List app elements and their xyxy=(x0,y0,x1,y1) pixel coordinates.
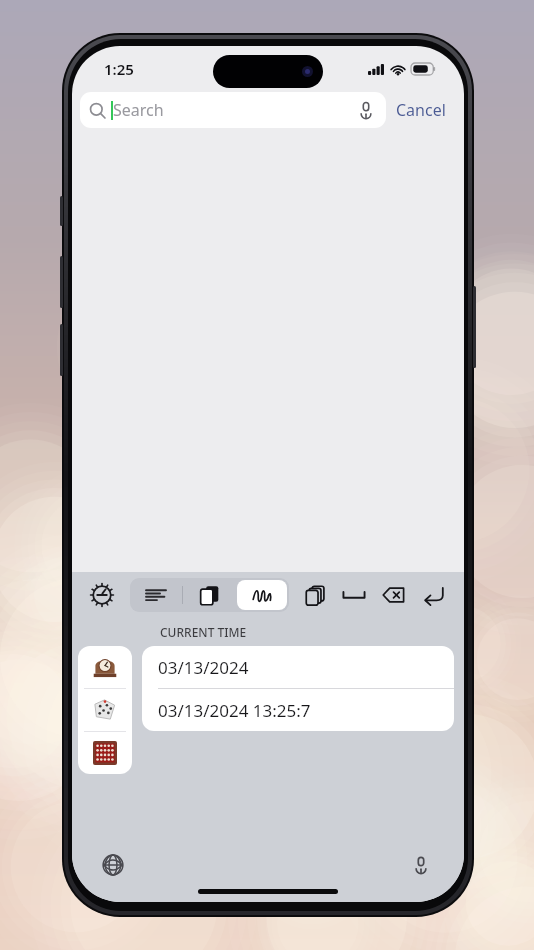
button[interactable]: Paste xyxy=(183,578,235,612)
button[interactable]: Format xyxy=(130,578,182,612)
button[interactable]: Delete xyxy=(378,579,410,611)
button[interactable]: Search xyxy=(80,92,386,128)
button[interactable]: Voice search xyxy=(355,99,377,121)
button[interactable]: Return xyxy=(418,579,450,611)
button[interactable]: Cancel xyxy=(386,93,456,127)
button[interactable]: Space xyxy=(338,579,370,611)
button[interactable]: Dice xyxy=(78,689,132,731)
staticText: Search xyxy=(113,99,164,121)
button[interactable]: Abacus xyxy=(78,732,132,774)
button[interactable]: Scribble xyxy=(237,580,287,610)
button[interactable]: 03/13/2024 xyxy=(142,646,454,688)
button[interactable]: Settings xyxy=(86,579,118,611)
staticText: 03/13/2024 xyxy=(158,656,249,679)
staticText: 03/13/2024 13:25:7 xyxy=(158,699,311,722)
staticText: CURRENT TIME xyxy=(160,624,247,640)
staticText: 1:25 xyxy=(104,59,134,79)
button[interactable]: 03/13/2024 13:25:7 xyxy=(142,689,454,731)
button[interactable]: Change keyboard xyxy=(96,848,130,882)
staticText: Cancel xyxy=(396,99,446,121)
button[interactable]: Clock xyxy=(78,646,132,688)
button[interactable]: Copy xyxy=(299,579,331,611)
button[interactable]: Dictation xyxy=(404,848,438,882)
